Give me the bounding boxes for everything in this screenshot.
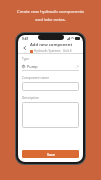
staticText: Hydraulic Systems · Unit 4 xyxy=(34,49,72,53)
staticText: Pump xyxy=(27,64,38,69)
staticText: Description xyxy=(22,96,40,100)
staticText: 9:41 xyxy=(22,37,29,41)
staticText: Save xyxy=(47,152,55,157)
button[interactable] xyxy=(22,82,79,91)
staticText: Create new hydraulic components xyxy=(17,9,84,15)
button[interactable]: Save xyxy=(22,150,79,158)
staticText: Type xyxy=(22,57,30,61)
button[interactable]: Back xyxy=(21,44,28,51)
button[interactable]: Pump xyxy=(22,63,79,71)
staticText: Add new component xyxy=(30,42,73,48)
staticText: Component name xyxy=(22,76,50,80)
button[interactable] xyxy=(22,102,79,128)
staticText: and take notes. xyxy=(35,17,66,23)
